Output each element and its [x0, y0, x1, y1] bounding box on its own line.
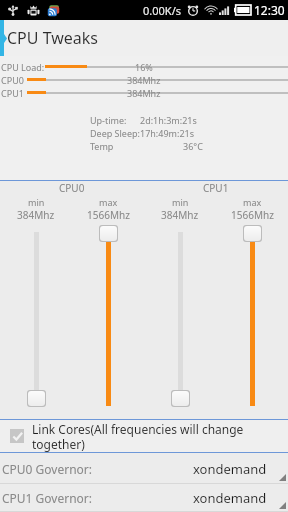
staticText: Link Cores(All frequencies will change t…: [32, 421, 284, 452]
button[interactable]: [144, 224, 216, 407]
button[interactable]: Link Cores(All frequencies will change t…: [0, 420, 288, 452]
staticText: 1566Mhz: [231, 208, 274, 222]
button[interactable]: CPU0 Governor:: [0, 453, 288, 484]
staticText: CPU1 Governor:: [2, 490, 93, 506]
staticText: 36°C: [183, 140, 203, 152]
staticText: 0.00K/s: [143, 3, 181, 18]
staticText: min: [28, 196, 45, 208]
staticText: 384Mhz: [161, 208, 199, 222]
staticText: xondemand: [193, 489, 267, 507]
staticText: xondemand: [193, 460, 267, 478]
staticText: Temp: [90, 140, 114, 152]
staticText: CPU1: [1, 87, 24, 99]
staticText: 12:30: [254, 2, 285, 18]
staticText: CPU0 Governor:: [2, 461, 93, 477]
staticText: Up-time:: [90, 114, 127, 126]
button[interactable]: [216, 224, 288, 407]
button[interactable]: [0, 224, 72, 407]
staticText: 2d:1h:3m:21s: [140, 114, 197, 126]
staticText: 1566Mhz: [87, 208, 130, 222]
staticText: CPU Load:: [1, 61, 45, 73]
staticText: CPU0: [1, 74, 24, 86]
staticText: 384Mhz: [17, 208, 55, 222]
staticText: Deep Sleep:: [90, 127, 140, 139]
staticText: max: [99, 196, 118, 208]
button[interactable]: [72, 224, 144, 407]
staticText: CPU Tweaks: [7, 27, 99, 49]
staticText: 384Mhz: [127, 87, 161, 99]
staticText: min: [172, 196, 189, 208]
staticText: max: [243, 196, 262, 208]
button[interactable]: CPU1 Governor:: [0, 484, 288, 512]
staticText: 384Mhz: [127, 74, 161, 86]
staticText: 17h:49m:21s: [140, 127, 195, 139]
staticText: 16%: [135, 61, 153, 73]
staticText: CPU0: [59, 181, 85, 194]
staticText: CPU1: [203, 181, 229, 194]
